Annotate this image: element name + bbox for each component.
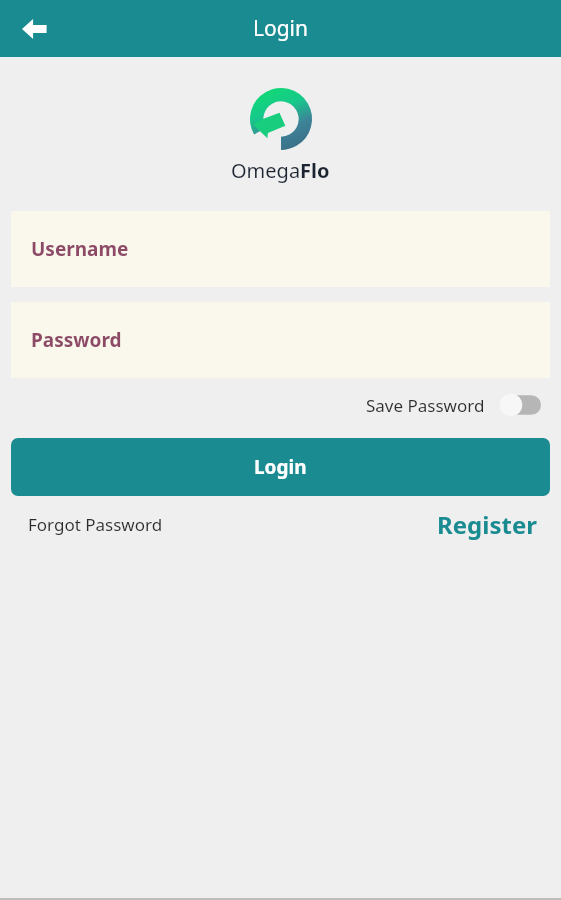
button[interactable]: Forgot Password	[28, 507, 163, 542]
staticText: Username	[31, 236, 129, 262]
button[interactable]: Login	[11, 438, 550, 496]
button[interactable]: Register	[437, 502, 537, 547]
staticText: Password	[31, 327, 122, 353]
button[interactable]: Username	[11, 211, 550, 287]
button[interactable]: Password	[11, 302, 550, 378]
staticText: Forgot Password	[28, 513, 163, 536]
button[interactable]: Back	[10, 5, 58, 53]
staticText: Login	[254, 454, 307, 480]
button[interactable]: Save Password	[364, 389, 543, 421]
staticText: OmegaFlo	[231, 157, 330, 184]
staticText: Register	[437, 508, 537, 541]
staticText: Login	[253, 14, 309, 43]
staticText: Save Password	[366, 394, 485, 417]
